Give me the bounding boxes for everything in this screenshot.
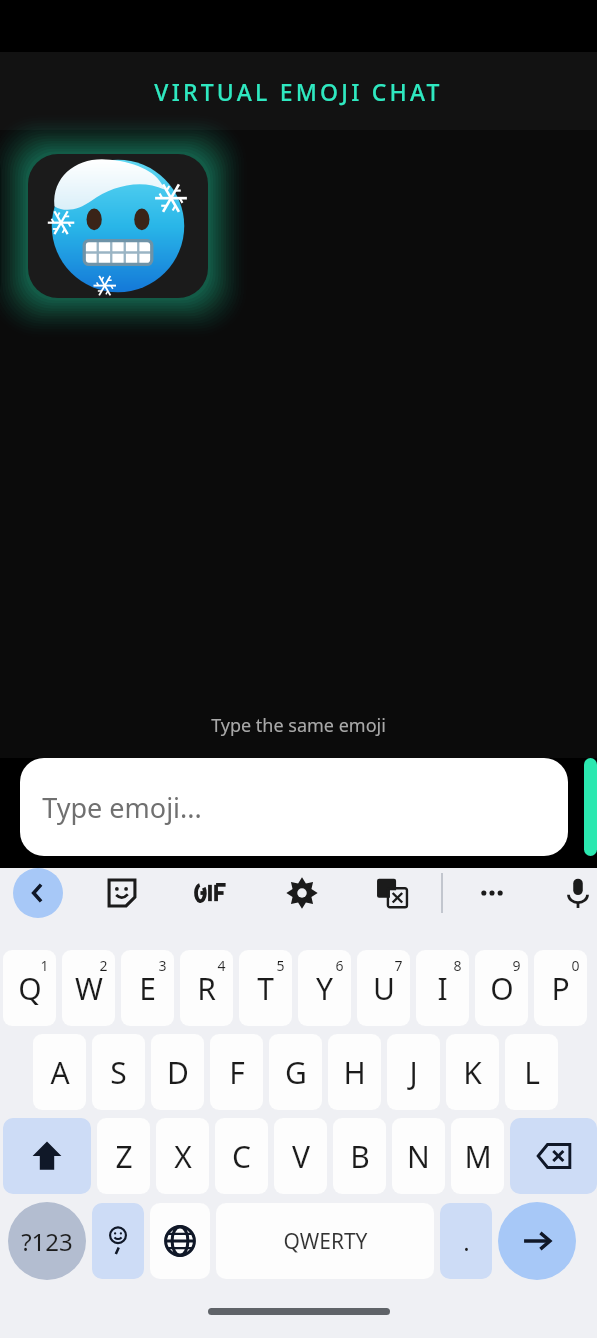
button[interactable]: Settings bbox=[279, 870, 325, 916]
button[interactable]: W bbox=[62, 950, 115, 1026]
staticText: 6 bbox=[335, 956, 344, 975]
staticText: ?123 bbox=[21, 1225, 73, 1258]
button[interactable]: G bbox=[269, 1034, 322, 1110]
staticText: Q bbox=[18, 968, 42, 1009]
button[interactable]: Shift bbox=[3, 1118, 91, 1194]
button[interactable]: Enter bbox=[498, 1202, 576, 1280]
button[interactable]: L bbox=[505, 1034, 558, 1110]
staticText: 5 bbox=[276, 956, 285, 975]
staticText: R bbox=[197, 968, 216, 1009]
staticText: 1 bbox=[40, 956, 49, 975]
staticText: S bbox=[110, 1052, 127, 1093]
button[interactable]: U bbox=[357, 950, 410, 1026]
button[interactable]: A bbox=[33, 1034, 86, 1110]
staticText: A bbox=[50, 1052, 70, 1093]
button[interactable]: O bbox=[475, 950, 528, 1026]
staticText: J bbox=[409, 1052, 418, 1093]
staticText: E bbox=[139, 968, 156, 1009]
staticText: P bbox=[551, 968, 570, 1009]
button[interactable]: Emoji bbox=[92, 1203, 144, 1279]
button[interactable]: D bbox=[151, 1034, 204, 1110]
button[interactable]: S bbox=[92, 1034, 145, 1110]
button[interactable]: H bbox=[328, 1034, 381, 1110]
staticText: QWERTY bbox=[283, 1227, 368, 1256]
staticText: Z bbox=[115, 1136, 133, 1177]
staticText: F bbox=[229, 1052, 245, 1093]
button[interactable]: B bbox=[333, 1118, 386, 1194]
staticText: VIRTUAL EMOJI CHAT bbox=[154, 76, 443, 107]
button[interactable]: ?123 bbox=[8, 1202, 86, 1280]
button[interactable]: Q bbox=[3, 950, 56, 1026]
button[interactable]: Z bbox=[97, 1118, 150, 1194]
staticText: . bbox=[463, 1225, 470, 1258]
button[interactable]: I bbox=[416, 950, 469, 1026]
button[interactable]: C bbox=[215, 1118, 268, 1194]
staticText: T bbox=[257, 968, 274, 1009]
button[interactable]: Back bbox=[13, 868, 63, 918]
staticText: K bbox=[463, 1052, 482, 1093]
button[interactable]: K bbox=[446, 1034, 499, 1110]
staticText: G bbox=[285, 1052, 307, 1093]
staticText: C bbox=[232, 1136, 251, 1177]
staticText: D bbox=[167, 1052, 189, 1093]
button[interactable]: Voice input bbox=[559, 870, 597, 916]
staticText: Type emoji... bbox=[42, 789, 202, 826]
staticText: M bbox=[464, 1136, 492, 1177]
staticText: 3 bbox=[158, 956, 167, 975]
staticText: 9 bbox=[512, 956, 521, 975]
staticText: 2 bbox=[99, 956, 108, 975]
button[interactable]: P bbox=[534, 950, 587, 1026]
button[interactable]: Type emoji... bbox=[20, 758, 568, 856]
staticText: U bbox=[373, 968, 395, 1009]
button[interactable]: F bbox=[210, 1034, 263, 1110]
button[interactable]: Send bbox=[584, 758, 597, 856]
staticText: B bbox=[350, 1136, 370, 1177]
button[interactable]: J bbox=[387, 1034, 440, 1110]
staticText: Type the same emoji bbox=[211, 713, 386, 738]
staticText: N bbox=[407, 1136, 430, 1177]
button[interactable]: Change language bbox=[150, 1203, 210, 1279]
staticText: I bbox=[437, 968, 448, 1009]
button[interactable]: E bbox=[121, 950, 174, 1026]
staticText: H bbox=[343, 1052, 366, 1093]
staticText: V bbox=[292, 1136, 310, 1177]
staticText: 8 bbox=[453, 956, 462, 975]
button[interactable]: M bbox=[451, 1118, 504, 1194]
button[interactable]: T bbox=[239, 950, 292, 1026]
button[interactable]: N bbox=[392, 1118, 445, 1194]
staticText: O bbox=[490, 968, 514, 1009]
button[interactable]: More options bbox=[469, 870, 515, 916]
staticText: 7 bbox=[394, 956, 403, 975]
button[interactable]: Y bbox=[298, 950, 351, 1026]
button[interactable]: GIF bbox=[189, 870, 235, 916]
staticText: 4 bbox=[217, 956, 226, 975]
staticText: Y bbox=[316, 968, 333, 1009]
button[interactable]: V bbox=[274, 1118, 327, 1194]
button[interactable]: Backspace bbox=[510, 1118, 597, 1194]
staticText: X bbox=[174, 1136, 192, 1177]
button[interactable]: Stickers bbox=[99, 870, 145, 916]
button[interactable]: QWERTY bbox=[216, 1203, 434, 1279]
staticText: L bbox=[524, 1052, 540, 1093]
button[interactable]: Cold face emoji message bbox=[4, 144, 230, 312]
button[interactable]: X bbox=[156, 1118, 209, 1194]
button[interactable]: Translate bbox=[369, 870, 415, 916]
staticText: 0 bbox=[571, 956, 580, 975]
button[interactable]: . bbox=[440, 1203, 492, 1279]
button[interactable]: R bbox=[180, 950, 233, 1026]
staticText: W bbox=[75, 968, 103, 1009]
